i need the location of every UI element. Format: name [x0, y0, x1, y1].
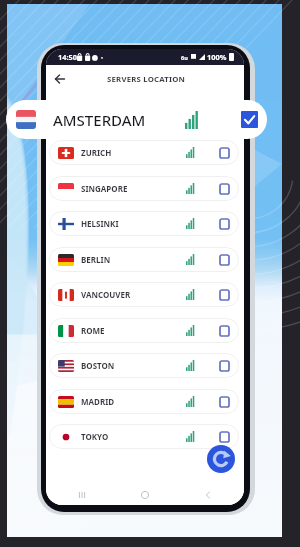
staticText: BERLIN	[81, 254, 111, 265]
button[interactable]: MADRID	[49, 389, 239, 414]
staticText: VANCOUVER	[81, 289, 131, 300]
staticText: TOKYO	[81, 431, 109, 442]
staticText: ZURICH	[81, 147, 112, 158]
button[interactable]: AMSTERDAM	[6, 100, 267, 139]
button[interactable]: Select MADRID	[220, 397, 229, 407]
staticText: MADRID	[81, 396, 115, 407]
staticText: HELSINKI	[81, 218, 119, 229]
button[interactable]: BOSTON	[49, 353, 239, 378]
button[interactable]: Select SINGAPORE	[220, 184, 229, 194]
button[interactable]: Back	[202, 489, 214, 501]
button[interactable]: ROME	[49, 318, 239, 343]
staticText: SERVERS LOCATION	[107, 74, 186, 85]
staticText: AMSTERDAM	[53, 110, 146, 130]
button[interactable]: Recents	[76, 489, 88, 501]
button[interactable]: Home	[139, 489, 151, 501]
button[interactable]: Select BERLIN	[220, 255, 229, 265]
staticText: ROME	[81, 325, 105, 336]
button[interactable]: TOKYO	[49, 424, 239, 449]
button[interactable]: Select VANCOUVER	[220, 290, 229, 300]
staticText: 14:50	[58, 52, 77, 62]
button[interactable]: Amsterdam selected	[241, 111, 258, 128]
button[interactable]: SINGAPORE	[49, 176, 239, 201]
button[interactable]: ZURICH	[49, 140, 239, 165]
staticText: 6u	[181, 54, 188, 61]
button[interactable]: Select ZURICH	[220, 148, 229, 158]
button[interactable]: VANCOUVER	[49, 282, 239, 307]
button[interactable]: Refresh	[207, 445, 235, 473]
button[interactable]: Select BOSTON	[220, 361, 229, 371]
staticText: 100%	[207, 52, 227, 62]
button[interactable]: Select TOKYO	[220, 432, 229, 442]
button[interactable]: HELSINKI	[49, 211, 239, 236]
button[interactable]: Select HELSINKI	[220, 219, 229, 229]
staticText: BOSTON	[81, 360, 115, 371]
staticText: SINGAPORE	[81, 183, 128, 194]
button[interactable]: BERLIN	[49, 247, 239, 272]
button[interactable]: Select ROME	[220, 326, 229, 336]
button[interactable]: Back	[51, 70, 69, 88]
